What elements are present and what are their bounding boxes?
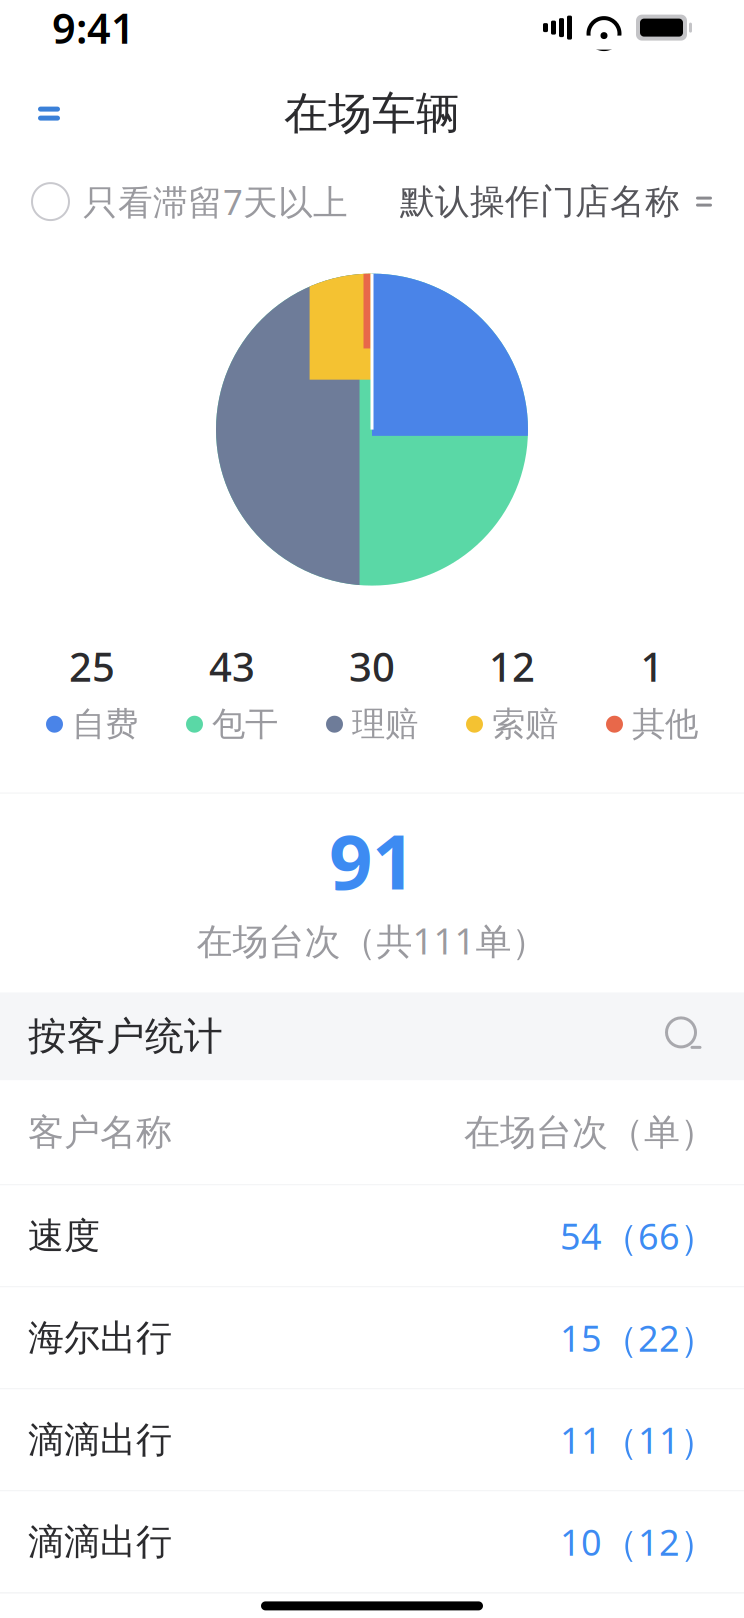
staticText: 12	[489, 640, 535, 693]
staticText: 只看滞留7天以上	[83, 179, 348, 225]
staticText: 客户名称	[28, 1110, 172, 1154]
staticText: 9:41	[52, 0, 135, 55]
staticText: 按客户统计	[28, 1013, 223, 1060]
button[interactable]: 滴滴出行	[0, 1389, 744, 1491]
staticText: 滴滴出行	[28, 1418, 172, 1462]
staticText: 理赔	[352, 704, 418, 745]
staticText: 在场台次（共111单）	[196, 917, 547, 964]
staticText: 25	[69, 640, 115, 693]
staticText: 索赔	[492, 704, 558, 745]
staticText: 在场车辆	[284, 87, 460, 141]
staticText: 1	[640, 640, 663, 693]
button[interactable]: 返回	[18, 77, 92, 151]
staticText: 11（11）	[560, 1416, 716, 1464]
staticText: 15（22）	[560, 1314, 716, 1362]
staticText: 滴滴出行	[28, 1520, 172, 1564]
staticText: 91	[329, 810, 415, 911]
staticText: 其他	[632, 704, 698, 745]
staticText: 10（12）	[560, 1518, 716, 1566]
staticText: 在场台次（单）	[464, 1110, 716, 1154]
button[interactable]: 搜索	[654, 1005, 716, 1067]
staticText: 包干	[212, 704, 278, 745]
staticText: 54（66）	[560, 1212, 716, 1260]
staticText: 自费	[72, 704, 138, 745]
button[interactable]: 滴滴出行	[0, 1491, 744, 1593]
staticText: 43	[209, 640, 255, 693]
staticText: 默认操作门店名称	[400, 180, 680, 223]
staticText: 30	[349, 640, 395, 693]
button[interactable]: 速度	[0, 1185, 744, 1287]
button[interactable]: 默认操作门店名称	[400, 180, 712, 223]
staticText: 速度	[28, 1214, 100, 1258]
button[interactable]: 海尔出行	[0, 1287, 744, 1389]
button[interactable]: 只看滞留7天以上	[32, 179, 348, 225]
staticText: 海尔出行	[28, 1316, 172, 1360]
